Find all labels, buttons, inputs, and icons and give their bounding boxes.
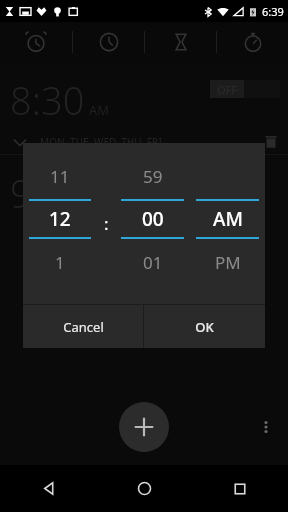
button[interactable]: Timer [145, 22, 216, 62]
button[interactable]: 9:00 [0, 155, 288, 223]
staticText: AM [213, 206, 243, 232]
button[interactable]: Back [0, 465, 96, 512]
button[interactable]: Recents [192, 465, 288, 512]
button[interactable]: 1 [23, 249, 97, 275]
staticText: PM [215, 251, 241, 274]
staticText: OFF [217, 82, 238, 97]
staticText: 8:30 [10, 74, 85, 126]
button[interactable]: AM [190, 201, 265, 237]
staticText: OK [195, 318, 214, 336]
button[interactable]: Add alarm [119, 402, 169, 452]
staticText: 1 [55, 251, 65, 274]
button[interactable]: 59 [115, 163, 190, 189]
button[interactable]: Alarm [0, 22, 72, 62]
button[interactable]: 12 [23, 201, 97, 237]
button[interactable]: 11 [23, 163, 97, 189]
staticText: : [104, 212, 109, 235]
staticText: 11 [50, 165, 70, 188]
staticText: AM [89, 101, 110, 119]
button[interactable]: Clock [73, 22, 144, 62]
button[interactable]: More options [252, 413, 280, 441]
button[interactable]: OFF [210, 80, 280, 98]
staticText: 01 [143, 251, 163, 274]
button[interactable]: Home [96, 465, 192, 512]
staticText: Cancel [63, 318, 104, 336]
button[interactable]: 01 [115, 249, 190, 275]
button[interactable]: 00 [115, 201, 190, 237]
button[interactable]: Stopwatch [217, 22, 288, 62]
button[interactable]: Cancel [23, 305, 143, 348]
staticText: 9:00 [10, 167, 85, 219]
button[interactable]: 8:30 [0, 62, 288, 130]
staticText: 12 [49, 206, 71, 232]
staticText: 6:39 [262, 4, 284, 19]
staticText: 59 [143, 165, 163, 188]
staticText: MON, TUE, WED, THU, FRI [40, 135, 162, 149]
staticText: 00 [142, 206, 164, 232]
button[interactable]: PM [190, 249, 265, 275]
button[interactable]: OK [144, 305, 265, 348]
